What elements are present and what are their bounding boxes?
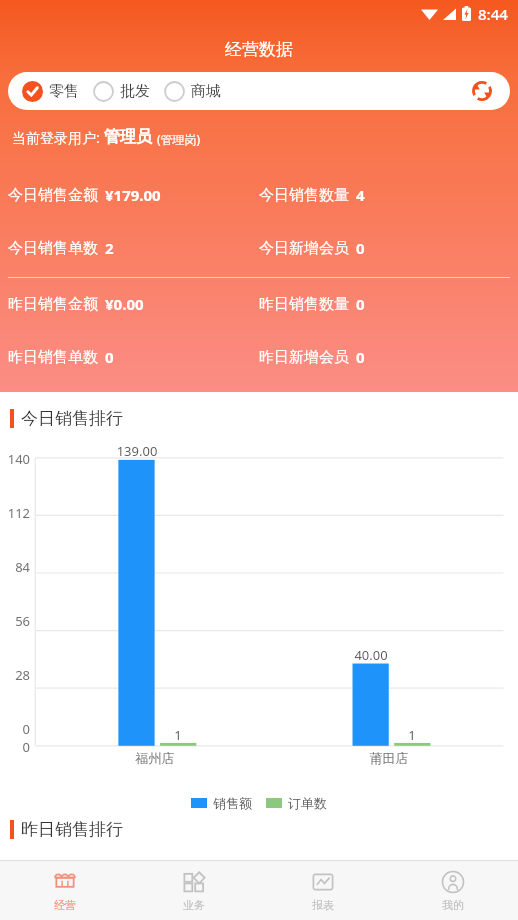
staticText: 0 xyxy=(0,738,30,756)
staticText: 28 xyxy=(0,666,30,684)
staticText: 当前登录用户: xyxy=(12,128,104,147)
staticText: 福州店 xyxy=(125,750,185,766)
button[interactable]: 我的 xyxy=(388,861,518,920)
staticText: 昨日销售单数 xyxy=(8,348,98,367)
staticText: 4 xyxy=(356,185,365,205)
staticText: ¥0.00 xyxy=(105,294,144,314)
button[interactable]: 业务 xyxy=(129,861,258,920)
staticText: 经营 xyxy=(54,898,76,912)
staticText: 商城 xyxy=(191,82,221,101)
staticText: 今日新增会员 xyxy=(259,239,349,258)
button[interactable]: 零售 xyxy=(22,81,79,102)
staticText: 经营数据 xyxy=(225,39,293,60)
staticText: 56 xyxy=(0,612,30,630)
staticText: 今日销售金额 xyxy=(8,186,98,205)
staticText: 业务 xyxy=(183,898,205,912)
staticText: 2 xyxy=(105,238,114,258)
staticText: 零售 xyxy=(49,82,79,101)
staticText: 昨日销售数量 xyxy=(259,295,349,314)
button[interactable]: 商城 xyxy=(164,81,221,102)
staticText: 139.00 xyxy=(107,442,167,460)
staticText: 40.00 xyxy=(341,646,401,664)
button[interactable]: 刷新 xyxy=(466,75,498,107)
staticText: 0 xyxy=(356,347,365,367)
staticText: 今日销售数量 xyxy=(259,186,349,205)
staticText: 8:44 xyxy=(478,4,508,24)
staticText: 昨日新增会员 xyxy=(259,348,349,367)
staticText: 报表 xyxy=(312,898,334,912)
staticText: 0 xyxy=(356,294,365,314)
button[interactable]: 批发 xyxy=(93,81,150,102)
button[interactable]: 报表 xyxy=(258,861,388,920)
staticText: 1 xyxy=(382,726,442,744)
staticText: 莆田店 xyxy=(359,750,419,766)
staticText: 0 xyxy=(0,720,30,738)
staticText: 0 xyxy=(105,347,114,367)
staticText: 销售额 xyxy=(213,795,252,811)
staticText: 我的 xyxy=(442,898,464,912)
staticText: 1 xyxy=(148,726,208,744)
staticText: 批发 xyxy=(120,82,150,101)
staticText: 昨日销售排行 xyxy=(21,819,123,840)
staticText: 订单数 xyxy=(288,795,327,811)
staticText: 今日销售排行 xyxy=(21,408,123,429)
staticText: 84 xyxy=(0,558,30,576)
staticText: ¥179.00 xyxy=(105,185,161,205)
staticText: 管理员 xyxy=(104,127,152,147)
staticText: 今日销售单数 xyxy=(8,239,98,258)
staticText: 昨日销售金额 xyxy=(8,295,98,314)
staticText: 112 xyxy=(0,504,30,522)
staticText: 0 xyxy=(356,238,365,258)
staticText: (管理岗) xyxy=(157,131,201,147)
button[interactable]: 经营 xyxy=(0,861,129,920)
staticText: 140 xyxy=(0,450,30,468)
